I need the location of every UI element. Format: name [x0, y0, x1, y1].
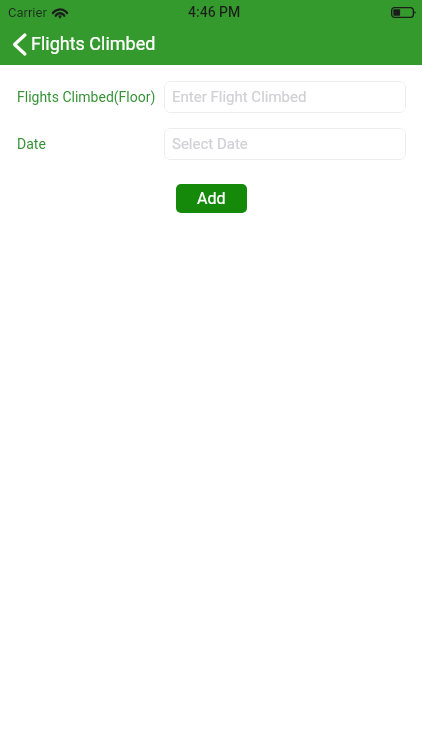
button[interactable]: Flights Climbed	[0, 24, 164, 65]
staticText: Carrier	[8, 5, 47, 20]
staticText: Add	[197, 189, 226, 208]
button[interactable]: Select Date	[164, 128, 406, 160]
button[interactable]: Add	[176, 184, 247, 213]
staticText: Flights Climbed(Floor)	[17, 89, 156, 105]
staticText: Date	[17, 136, 46, 152]
staticText: Select Date	[172, 135, 248, 153]
button[interactable]: Enter Flight Climbed	[164, 81, 406, 113]
staticText: 4:46 PM	[188, 4, 241, 20]
staticText: Enter Flight Climbed	[172, 88, 307, 106]
staticText: Flights Climbed	[31, 33, 156, 54]
